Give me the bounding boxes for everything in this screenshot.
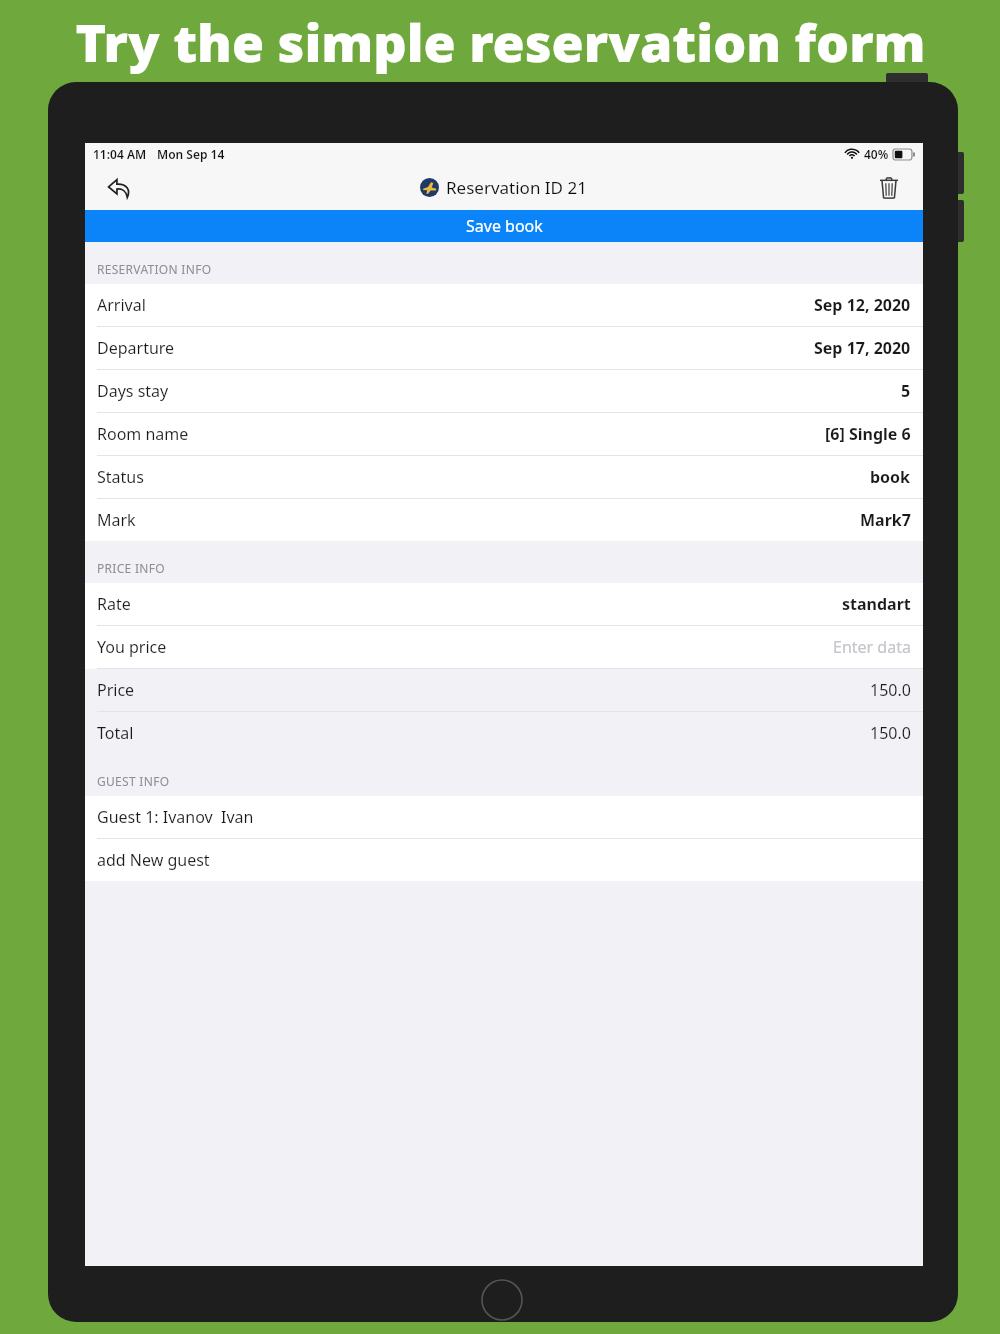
staticText: Arrival xyxy=(97,294,146,316)
staticText: book xyxy=(870,466,911,488)
staticText: standart xyxy=(842,593,911,615)
button[interactable]: Guest 1: Ivanov Ivan xyxy=(85,796,923,839)
staticText: 5 xyxy=(901,380,911,402)
staticText: Departure xyxy=(97,337,175,359)
staticText: Mark7 xyxy=(860,509,911,531)
staticText: Rate xyxy=(97,593,131,615)
button[interactable]: Arrival xyxy=(85,284,923,327)
staticText: Status xyxy=(97,466,144,488)
staticText: You price xyxy=(97,636,167,658)
button[interactable]: You price xyxy=(85,626,923,669)
button[interactable]: add New guest xyxy=(85,839,923,881)
staticText: RESERVATION INFO xyxy=(97,261,212,277)
staticText: Room name xyxy=(97,423,189,445)
button[interactable]: Back xyxy=(99,168,139,208)
staticText: add New guest xyxy=(97,849,210,871)
staticText: Enter data xyxy=(833,636,911,658)
staticText: 11:04 AM xyxy=(93,146,147,162)
staticText: Sep 12, 2020 xyxy=(814,294,911,316)
button[interactable]: Mark xyxy=(85,499,923,541)
button[interactable]: Price xyxy=(85,669,923,712)
button[interactable]: Departure xyxy=(85,327,923,370)
staticText: Mon Sep 14 xyxy=(157,146,225,162)
staticText: 150.0 xyxy=(870,722,911,744)
staticText: Price xyxy=(97,679,135,701)
staticText: Reservation ID 21 xyxy=(446,176,587,199)
staticText: Try the simple reservation form xyxy=(75,6,926,77)
button[interactable]: Room name xyxy=(85,413,923,456)
staticText: GUEST INFO xyxy=(97,773,170,789)
button[interactable]: Total xyxy=(85,712,923,754)
staticText: Days stay xyxy=(97,380,169,402)
staticText: Sep 17, 2020 xyxy=(814,337,911,359)
button[interactable]: Save book xyxy=(85,210,923,242)
staticText: Guest 1: Ivanov Ivan xyxy=(97,806,254,828)
button[interactable]: Delete xyxy=(869,168,909,208)
staticText: [6] Single 6 xyxy=(825,423,911,445)
staticText: 150.0 xyxy=(870,679,911,701)
button[interactable]: Days stay xyxy=(85,370,923,413)
staticText: Total xyxy=(97,722,134,744)
staticText: PRICE INFO xyxy=(97,560,165,576)
staticText: Mark xyxy=(97,509,136,531)
button[interactable]: Rate xyxy=(85,583,923,626)
staticText: 40% xyxy=(864,146,889,162)
button[interactable]: Status xyxy=(85,456,923,499)
staticText: Save book xyxy=(466,215,543,237)
